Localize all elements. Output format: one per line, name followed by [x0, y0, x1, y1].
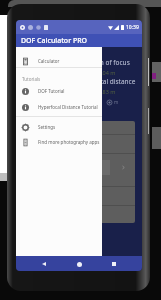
button[interactable]: Hyperfocal Distance Tutorial	[16, 99, 102, 115]
staticText: Depth of focus	[85, 58, 130, 67]
staticText: 0.04 m	[98, 69, 116, 76]
button[interactable]: Find more photography apps	[16, 134, 102, 150]
button[interactable]: Settings	[16, 119, 102, 135]
staticText: 10:39	[126, 24, 139, 31]
staticText: 1.83 m	[98, 88, 116, 95]
button[interactable]: DOF Tutorial	[16, 83, 102, 99]
staticText: Calculator	[38, 58, 60, 64]
staticText: Tutorials	[22, 76, 41, 82]
staticText: Find more photography apps	[38, 139, 100, 145]
staticText: DOF Tutorial	[38, 88, 65, 94]
button[interactable]: Recent apps	[107, 257, 121, 271]
button[interactable]: Back	[37, 257, 51, 271]
staticText: DOF Calculator PRO	[21, 36, 88, 46]
button[interactable]: Calculator	[16, 53, 102, 69]
staticText: Hyperfocal Distance Tutorial	[38, 104, 98, 110]
staticText: Hyperfocal distance	[75, 77, 136, 86]
staticText: Settings	[38, 124, 56, 130]
staticText: m	[114, 99, 119, 105]
button[interactable]: Home	[72, 257, 86, 271]
